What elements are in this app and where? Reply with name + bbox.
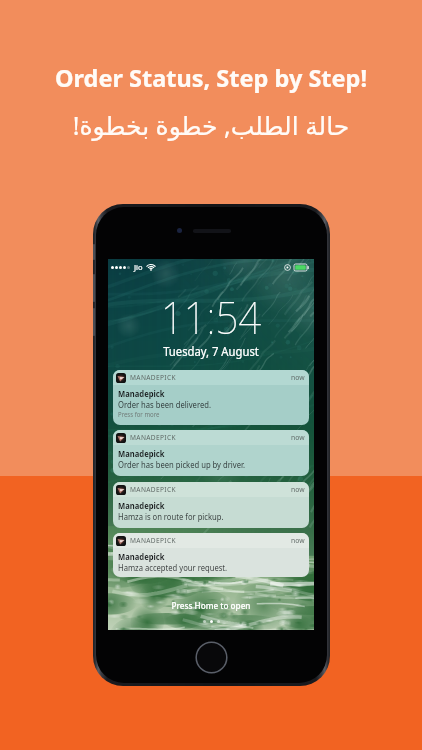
staticText: now — [291, 433, 305, 442]
staticText: MANADEPICK — [130, 485, 176, 494]
staticText: now — [291, 536, 305, 545]
staticText: Hamza is on route for pickup. — [118, 511, 224, 522]
staticText: MANADEPICK — [130, 433, 176, 442]
staticText: !حالة الطلب, خطوة بخطوة — [0, 108, 422, 142]
staticText: Order Status, Step by Step! — [0, 62, 422, 94]
staticText: Order has been delivered. — [118, 399, 212, 410]
staticText: MANADEPICK — [130, 373, 176, 382]
staticText: 11:54 — [119, 286, 303, 347]
button[interactable]: MANADEPICK — [113, 370, 309, 425]
staticText: Hamza accepted your request. — [118, 562, 227, 573]
button[interactable]: MANADEPICK — [113, 533, 309, 577]
button[interactable]: MANADEPICK — [113, 482, 309, 528]
staticText: MANADEPICK — [130, 536, 176, 545]
staticText: Jio — [134, 262, 143, 272]
staticText: now — [291, 485, 305, 494]
staticText: Order has been picked up by driver. — [118, 459, 245, 470]
staticText: Manadepick — [118, 448, 165, 459]
staticText: Tuesday, 7 August — [118, 343, 304, 360]
staticText: Manadepick — [118, 388, 165, 399]
button[interactable]: MANADEPICK — [113, 430, 309, 476]
staticText: Manadepick — [118, 551, 165, 562]
staticText: Press Home to open — [115, 600, 307, 612]
staticText: Press for more — [118, 410, 160, 419]
staticText: now — [291, 373, 305, 382]
staticText: Manadepick — [118, 500, 165, 511]
